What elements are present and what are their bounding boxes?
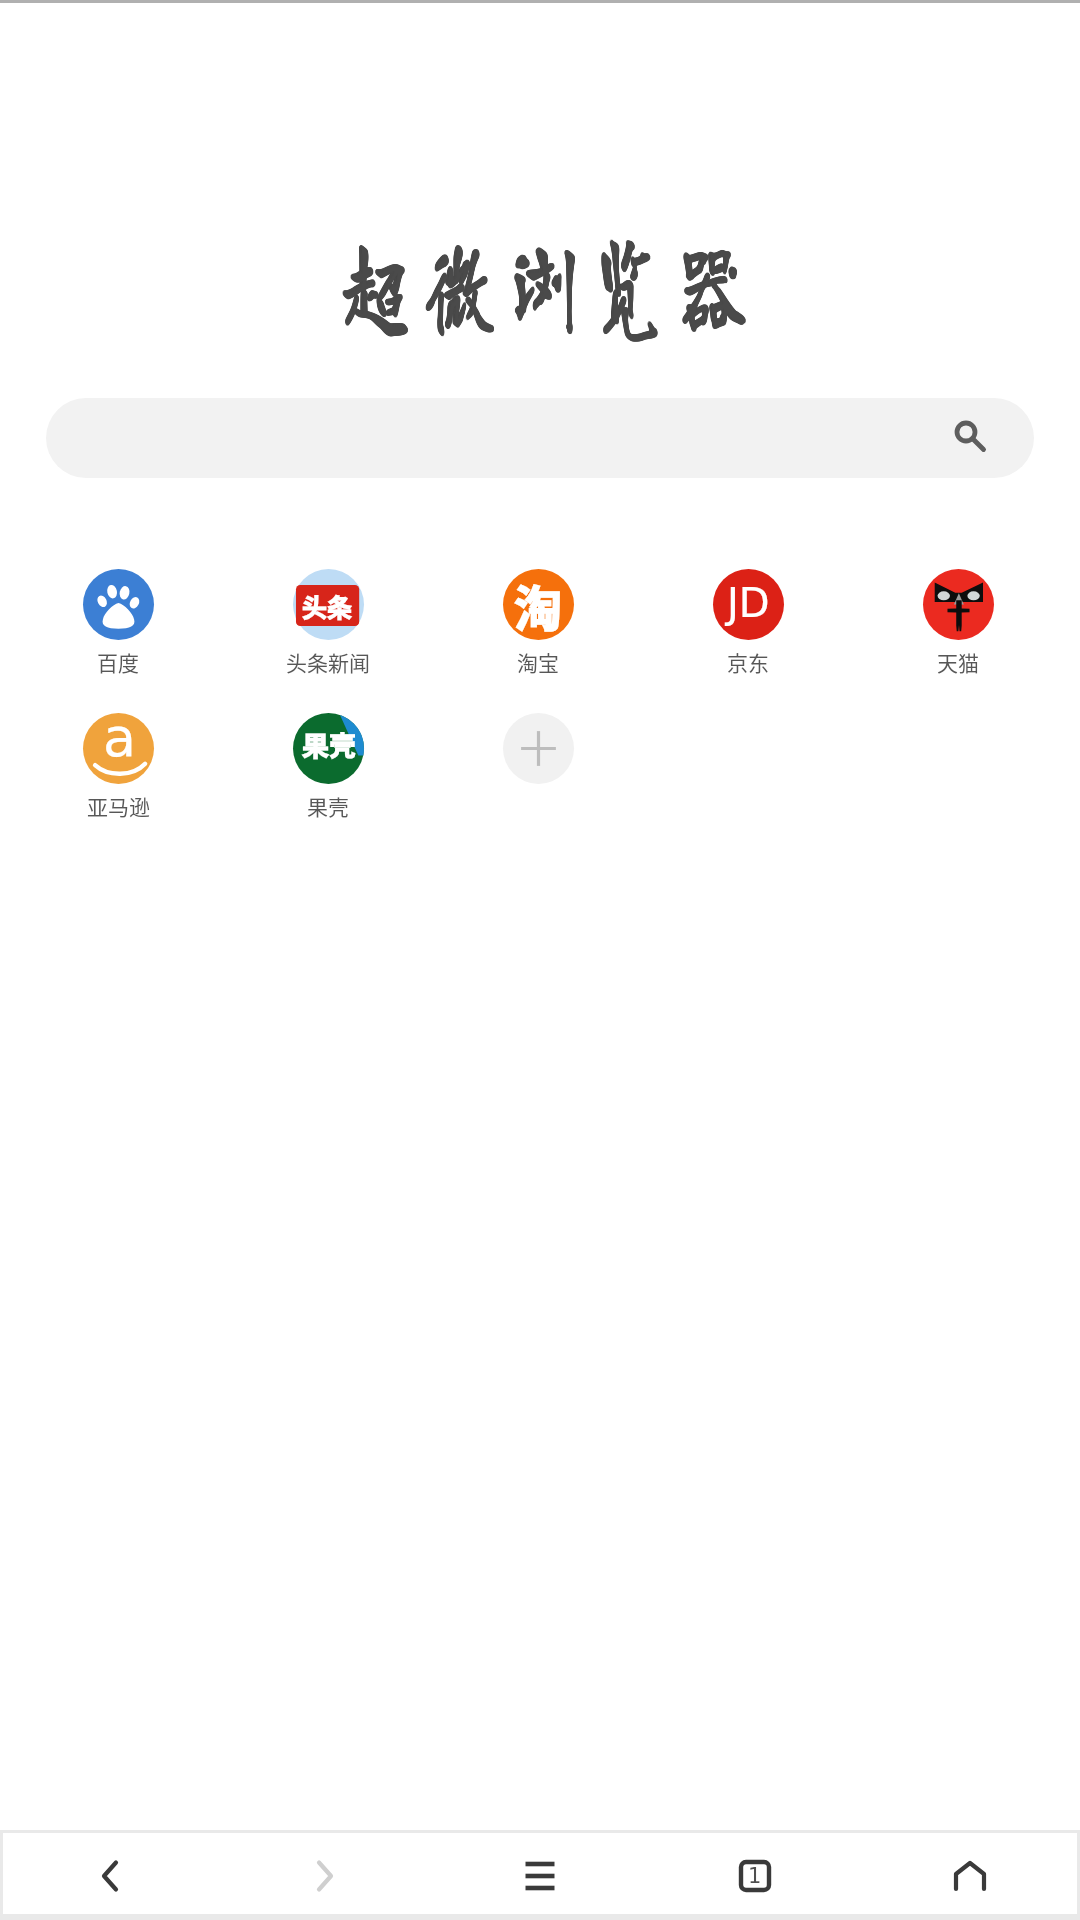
staticText: 超微浏览器 [342,227,766,335]
staticText: 超微浏览器 [340,227,764,335]
staticText: a [103,706,137,769]
staticText: 1 [748,1864,762,1888]
button[interactable]: 亚马逊 [13,713,223,821]
staticText: 超微浏览器 [340,228,764,336]
staticText: 超微浏览器 [341,226,766,334]
staticText: 亚马逊 [87,791,150,821]
staticText: 超微浏览器 [341,229,765,337]
button[interactable]: 头条新闻 [223,569,433,677]
button[interactable]: 果壳 [223,713,433,821]
button[interactable]: 天猫 [853,569,1063,677]
button[interactable]: 淘宝 [433,569,643,677]
staticText: 超微浏览器 [341,228,766,336]
staticText: 超微浏览器 [340,226,764,334]
staticText: 超微浏览器 [340,227,764,335]
button[interactable]: Menu [432,1833,647,1914]
button[interactable]: Search [46,398,1034,478]
staticText: 淘 [514,570,563,640]
staticText: 超微浏览器 [340,229,764,337]
staticText: 头条 [302,588,353,624]
staticText: 超微浏览器 [342,229,766,337]
staticText: 超微浏览器 [340,230,764,338]
staticText: 天猫 [937,647,979,677]
staticText: 超微浏览器 [341,230,766,338]
staticText: 超微浏览器 [342,228,766,336]
button[interactable]: Home [862,1833,1077,1914]
staticText: 超微浏览器 [341,227,766,335]
staticText: 超微浏览器 [340,229,764,337]
staticText: 果壳 [307,791,349,821]
button[interactable]: Tabs [647,1833,862,1914]
staticText: 头条新闻 [286,647,370,677]
staticText: 百度 [97,647,139,677]
staticText: JD [727,580,770,627]
staticText: 京东 [727,647,769,677]
staticText: 超微浏览器 [341,230,765,338]
staticText: 超微浏览器 [341,226,765,334]
staticText: 淘宝 [517,647,559,677]
button[interactable]: 百度 [13,569,223,677]
staticText: 超微浏览器 [341,229,766,337]
staticText: 超微浏览器 [341,228,765,336]
staticText: 超微浏览器 [341,227,765,335]
button[interactable]: Back [3,1833,217,1914]
staticText: 果壳 [302,725,356,764]
button[interactable]: 京东 [643,569,853,677]
staticText: 超微浏览器 [340,228,764,336]
button[interactable]: Add shortcut [433,713,643,784]
button[interactable]: Forward [217,1833,432,1914]
